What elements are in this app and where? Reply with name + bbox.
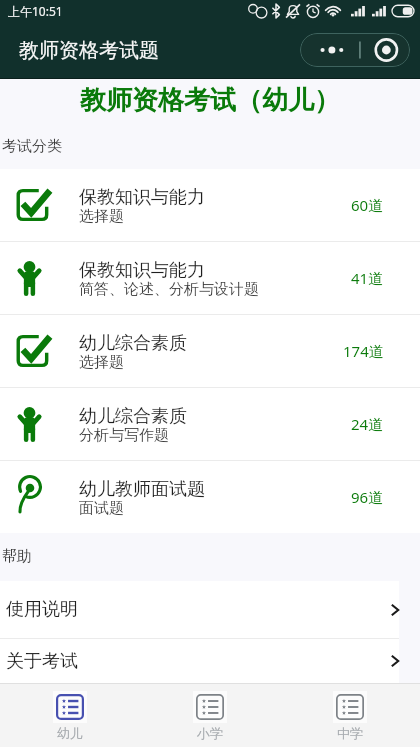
staticText: 中学 <box>337 725 363 741</box>
staticText: 分析与写作题 <box>79 426 169 445</box>
staticText: 选择题 <box>79 207 124 226</box>
staticText: 教师资格考试题 <box>19 38 159 63</box>
staticText: 使用说明 <box>6 598 78 621</box>
button[interactable]: 中学 <box>280 684 420 747</box>
staticText: 24道 <box>351 414 384 434</box>
button[interactable]: 幼儿综合素质 <box>0 388 420 460</box>
staticText: 幼儿综合素质 <box>79 405 187 428</box>
staticText: 幼儿 <box>57 725 83 741</box>
button[interactable]: 使用说明 <box>0 581 399 638</box>
staticText: 保教知识与能力 <box>79 186 205 209</box>
staticText: 教师资格考试（幼儿） <box>80 84 340 117</box>
staticText: 帮助 <box>2 547 32 566</box>
staticText: 选择题 <box>79 353 124 372</box>
staticText: 小学 <box>197 725 223 741</box>
staticText: 关于考试 <box>6 650 78 673</box>
staticText: 幼儿综合素质 <box>79 332 187 355</box>
staticText: 保教知识与能力 <box>79 259 205 282</box>
staticText: 96道 <box>351 487 384 507</box>
button[interactable]: Recent apps and home <box>300 33 410 67</box>
staticText: 上午10:51 <box>8 3 63 19</box>
button[interactable]: 幼儿综合素质 <box>0 315 420 387</box>
staticText: 41道 <box>351 268 384 288</box>
staticText: 174道 <box>343 341 384 361</box>
button[interactable]: 小学 <box>140 684 280 747</box>
button[interactable]: 幼儿教师面试题 <box>0 461 420 533</box>
staticText: 60道 <box>351 195 384 215</box>
button[interactable]: 幼儿 <box>0 684 140 747</box>
staticText: 简答、论述、分析与设计题 <box>79 280 259 299</box>
button[interactable]: 保教知识与能力 <box>0 169 420 241</box>
staticText: 面试题 <box>79 499 124 518</box>
staticText: 考试分类 <box>2 137 62 156</box>
button[interactable]: 保教知识与能力 <box>0 242 420 314</box>
staticText: 幼儿教师面试题 <box>79 478 205 501</box>
button[interactable]: 关于考试 <box>0 639 399 683</box>
